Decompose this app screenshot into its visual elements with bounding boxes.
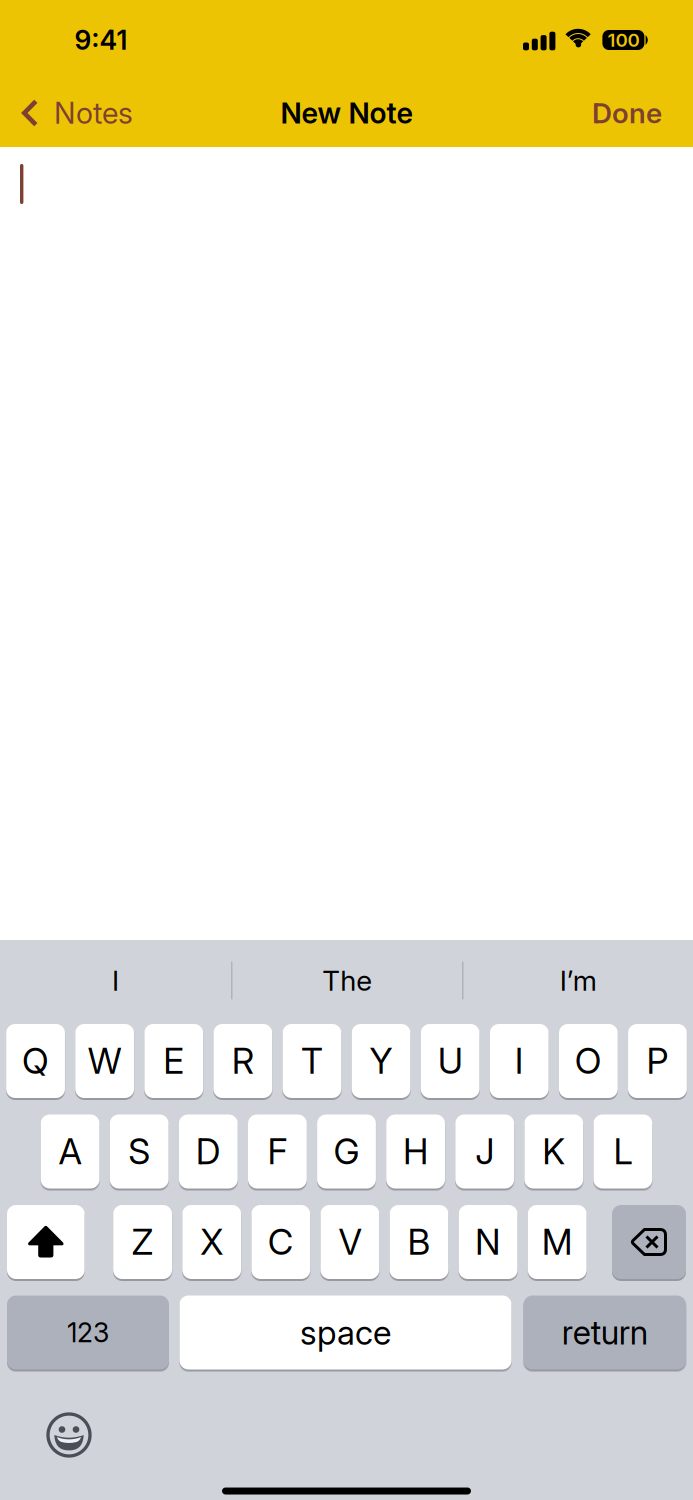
- staticText: Q: [22, 1040, 49, 1082]
- button[interactable]: M: [528, 1205, 587, 1279]
- button[interactable]: Y: [352, 1024, 410, 1098]
- button[interactable]: D: [179, 1114, 238, 1188]
- button[interactable]: H: [386, 1114, 445, 1188]
- button[interactable]: W: [75, 1024, 134, 1098]
- staticText: O: [575, 1040, 602, 1082]
- button[interactable]: K: [524, 1114, 583, 1188]
- staticText: 123: [67, 1316, 109, 1349]
- staticText: space: [300, 1312, 391, 1353]
- button[interactable]: B: [390, 1205, 448, 1279]
- button[interactable]: 123: [7, 1295, 169, 1369]
- button[interactable]: The: [322, 940, 372, 1024]
- button[interactable]: E: [144, 1024, 203, 1098]
- staticText: H: [403, 1130, 428, 1173]
- staticText: A: [59, 1130, 82, 1173]
- button[interactable]: return: [523, 1295, 686, 1369]
- staticText: D: [196, 1130, 221, 1173]
- staticText: I’m: [560, 964, 597, 997]
- button[interactable]: L: [593, 1114, 652, 1188]
- button[interactable]: I’m: [560, 940, 597, 1024]
- staticText: X: [200, 1221, 223, 1263]
- staticText: E: [163, 1040, 184, 1082]
- staticText: R: [232, 1040, 254, 1082]
- staticText: L: [613, 1130, 632, 1173]
- button[interactable]: I: [112, 940, 119, 1024]
- staticText: G: [333, 1130, 359, 1173]
- button[interactable]: S: [110, 1114, 169, 1188]
- staticText: The: [322, 964, 372, 997]
- button[interactable]: Notes: [0, 95, 133, 131]
- staticText: U: [438, 1040, 463, 1082]
- staticText: Y: [369, 1040, 392, 1082]
- staticText: P: [646, 1040, 668, 1082]
- staticText: I: [112, 964, 119, 997]
- button[interactable]: P: [628, 1024, 687, 1098]
- staticText: K: [542, 1130, 565, 1173]
- button[interactable]: Shift: [7, 1205, 85, 1279]
- button[interactable]: Emoji: [46, 1412, 92, 1458]
- staticText: 100: [607, 29, 639, 51]
- button[interactable]: I: [490, 1024, 549, 1098]
- staticText: C: [268, 1221, 294, 1263]
- button[interactable]: space: [179, 1295, 511, 1369]
- staticText: S: [128, 1130, 150, 1173]
- staticText: J: [475, 1130, 494, 1173]
- button[interactable]: Done: [592, 96, 693, 130]
- staticText: B: [407, 1221, 430, 1263]
- staticText: F: [267, 1130, 287, 1173]
- button[interactable]: V: [320, 1205, 379, 1279]
- button[interactable]: Z: [113, 1205, 172, 1279]
- button[interactable]: R: [213, 1024, 272, 1098]
- button[interactable]: N: [459, 1205, 517, 1279]
- staticText: N: [475, 1221, 501, 1263]
- staticText: 9:41: [74, 24, 127, 56]
- staticText: Done: [592, 96, 662, 130]
- button[interactable]: C: [251, 1205, 310, 1279]
- button[interactable]: U: [421, 1024, 480, 1098]
- button[interactable]: Q: [6, 1024, 65, 1098]
- button[interactable]: F: [248, 1114, 307, 1188]
- button[interactable]: Delete: [612, 1205, 686, 1279]
- staticText: V: [338, 1221, 361, 1263]
- staticText: New Note: [280, 96, 412, 130]
- staticText: T: [301, 1040, 323, 1082]
- button[interactable]: T: [282, 1024, 341, 1098]
- staticText: Z: [132, 1221, 154, 1263]
- staticText: M: [542, 1221, 573, 1263]
- staticText: return: [562, 1313, 648, 1352]
- button[interactable]: X: [182, 1205, 241, 1279]
- button[interactable]: O: [559, 1024, 618, 1098]
- button[interactable]: G: [317, 1114, 376, 1188]
- staticText: I: [515, 1040, 524, 1082]
- button[interactable]: J: [455, 1114, 514, 1188]
- staticText: W: [88, 1040, 122, 1082]
- staticText: Notes: [54, 95, 133, 131]
- button[interactable]: A: [41, 1114, 99, 1188]
